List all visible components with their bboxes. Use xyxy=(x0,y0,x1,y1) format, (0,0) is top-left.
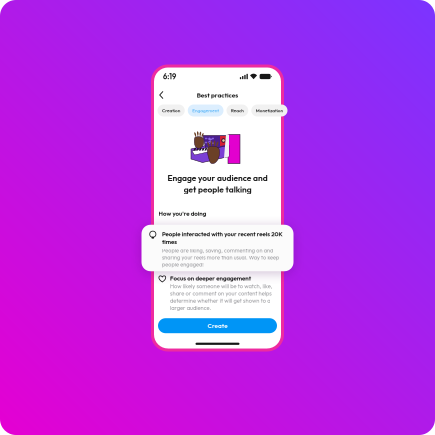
staticText: get people talking xyxy=(82,84,353,126)
staticText: Engage your audience and xyxy=(17,37,418,80)
staticText: How you're doing xyxy=(0,186,172,217)
staticText: People are liking, saving, commenting on… xyxy=(0,336,435,419)
staticText: People interacted with your recent reels… xyxy=(0,268,435,330)
